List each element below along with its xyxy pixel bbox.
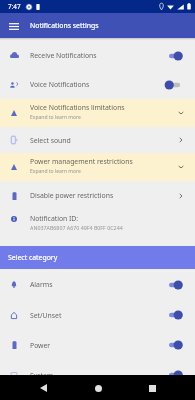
staticText: Power management restrictions xyxy=(30,157,133,166)
button[interactable]: Home xyxy=(86,376,110,400)
button[interactable]: Alarms xyxy=(0,269,195,300)
staticText: Select sound xyxy=(30,136,178,145)
button[interactable]: Open navigation menu xyxy=(3,15,25,37)
staticText: Power xyxy=(30,341,165,350)
staticText: System xyxy=(30,371,165,375)
staticText: Receive Notifications xyxy=(30,51,165,60)
staticText: Alarms xyxy=(30,280,165,289)
button[interactable]: Recent apps xyxy=(140,376,164,400)
staticText: Set/Unset xyxy=(30,311,165,320)
button[interactable]: Power xyxy=(0,330,195,360)
staticText: 7:47 xyxy=(8,2,21,11)
staticText: Expand to learn more xyxy=(30,114,81,121)
staticText: AN037AB6807 A670 49F4 B0FF 0C244 xyxy=(30,224,123,231)
button[interactable]: Select sound xyxy=(0,127,195,153)
button[interactable]: Voice Notifications xyxy=(0,70,195,99)
staticText: Voice Notifications xyxy=(30,80,165,89)
button[interactable]: Select category xyxy=(0,246,195,269)
staticText: Notification ID: xyxy=(30,214,79,223)
staticText: Select category xyxy=(8,253,58,262)
staticText: Notifications settings xyxy=(30,21,99,30)
staticText: Disable power restrictions xyxy=(30,191,178,200)
staticText: Expand to learn more xyxy=(30,168,81,175)
button[interactable]: Receive Notifications xyxy=(0,41,195,70)
button[interactable]: Notification ID: xyxy=(0,210,195,246)
button[interactable]: Disable power restrictions xyxy=(0,181,195,210)
button[interactable]: Voice Notifications limitations xyxy=(0,99,195,127)
staticText: Voice Notifications limitations xyxy=(30,103,125,112)
button[interactable]: Power management restrictions xyxy=(0,153,195,181)
button[interactable]: System xyxy=(0,360,195,375)
button[interactable]: Set/Unset xyxy=(0,300,195,330)
button[interactable]: Back xyxy=(31,376,55,400)
